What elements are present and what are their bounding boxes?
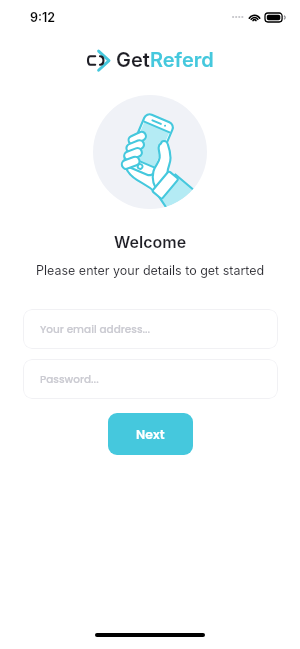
button[interactable]: Your email address...: [23, 309, 278, 349]
staticText: 9:12: [30, 10, 56, 25]
staticText: Next: [136, 426, 165, 443]
button[interactable]: Next: [108, 413, 193, 455]
staticText: Referd: [150, 48, 214, 72]
button[interactable]: Password...: [23, 359, 278, 399]
staticText: Password...: [40, 372, 99, 387]
staticText: Welcome: [114, 232, 187, 251]
other: Home indicator: [95, 633, 205, 637]
staticText: Please enter your details to get started: [36, 263, 265, 278]
staticText: Get: [116, 48, 150, 72]
staticText: Your email address...: [40, 322, 151, 337]
